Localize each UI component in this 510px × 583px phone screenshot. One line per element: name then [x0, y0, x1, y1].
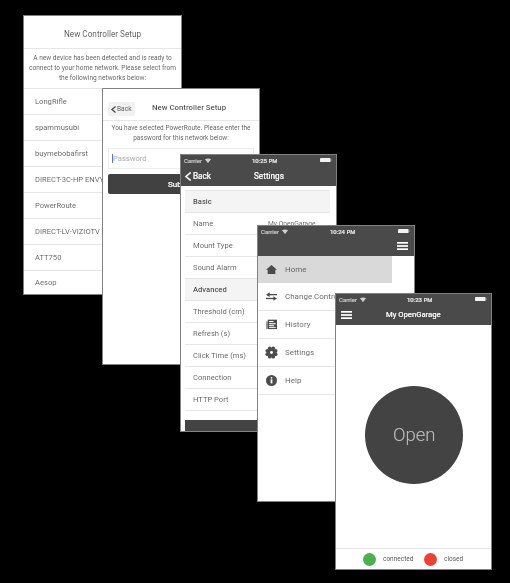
staticText: Settings	[285, 348, 315, 357]
button[interactable]: Change Controller	[258, 283, 392, 310]
staticText: History	[285, 320, 311, 329]
staticText: PowerRoute	[35, 201, 77, 210]
staticText: Aesop	[35, 278, 57, 287]
staticText: HTTP Port	[193, 395, 229, 404]
staticText: New Controller Setup	[64, 29, 142, 39]
button[interactable]: Threshold (cm)	[185, 301, 330, 322]
button[interactable]: Name	[185, 213, 330, 234]
button[interactable]: Connection	[185, 367, 330, 388]
staticText: Basic	[193, 197, 212, 206]
staticText: Submit	[168, 180, 194, 189]
staticText: Password	[113, 154, 147, 163]
staticText: Home	[285, 265, 307, 274]
button[interactable]: Back	[184, 171, 212, 181]
staticText: Sound Alarm	[193, 263, 237, 272]
staticText: Help	[285, 376, 302, 385]
button[interactable]: Home	[258, 256, 392, 283]
staticText: Refresh (s)	[193, 329, 231, 338]
staticText: 10:25 PM	[252, 157, 278, 164]
button[interactable]: Open navigation menu	[393, 237, 411, 255]
button[interactable]: Advanced	[185, 279, 330, 300]
staticText: DIRECT-3C-HP ENVY	[35, 175, 105, 184]
staticText: A new device has been detected and is re…	[26, 54, 179, 82]
button[interactable]: Settings	[258, 339, 392, 366]
staticText: Name	[193, 219, 214, 228]
button[interactable]: DIRECT-LV-VIZIOTV	[24, 219, 181, 244]
button[interactable]: Refresh (s)	[185, 323, 330, 344]
staticText: connected	[383, 555, 414, 563]
staticText: Threshold (cm)	[193, 307, 245, 316]
staticText: Mount Type	[193, 241, 233, 250]
button[interactable]: buymebobafirst	[24, 141, 181, 166]
staticText: 10:24 PM	[330, 228, 356, 235]
staticText: DIRECT-LV-VIZIOTV	[35, 227, 100, 236]
button[interactable]: Aesop	[24, 271, 181, 294]
button[interactable]: spammusubi	[24, 115, 181, 140]
button[interactable]: Back	[108, 102, 135, 116]
staticText: Settings	[254, 171, 284, 181]
button[interactable]: Sound Alarm	[185, 257, 330, 278]
button[interactable]: PowerRoute	[24, 193, 181, 218]
staticText: New Controller Setup	[152, 103, 227, 112]
staticText: Carrier	[184, 157, 202, 164]
staticText: Change Controller	[285, 292, 349, 301]
staticText: Back	[193, 171, 211, 181]
button[interactable]: Open	[365, 386, 463, 484]
button[interactable]: Basic	[185, 191, 330, 212]
staticText: Advanced	[193, 285, 227, 294]
button[interactable]: Open navigation menu	[337, 306, 355, 324]
button[interactable]: LongRifle	[24, 89, 181, 114]
button[interactable]: ATT750	[24, 245, 181, 270]
staticText: spammusubi	[35, 123, 80, 132]
button[interactable]: HTTP Port	[185, 389, 330, 410]
staticText: LongRifle	[35, 97, 67, 106]
staticText: Click Time (ms)	[193, 351, 246, 360]
staticText: My OpenGarage	[268, 220, 316, 228]
button[interactable]: Click Time (ms)	[185, 345, 330, 366]
staticText: Back	[117, 105, 132, 113]
button[interactable]: Submit	[108, 174, 254, 194]
staticText: ATT750	[35, 253, 62, 262]
staticText: You have selected PowerRoute. Please ent…	[107, 124, 255, 141]
button[interactable]: Mount Type	[185, 235, 330, 256]
staticText: Carrier	[339, 296, 357, 303]
staticText: Connection	[193, 373, 232, 382]
button[interactable]: Help	[258, 367, 392, 394]
staticText: My OpenGarage	[386, 310, 441, 319]
staticText: closed	[444, 555, 464, 563]
staticText: 10:23 PM	[407, 296, 433, 303]
staticText: Open	[393, 424, 436, 446]
staticText: Carrier	[261, 228, 279, 235]
staticText: buymebobafirst	[35, 149, 88, 158]
button[interactable]: History	[258, 311, 392, 338]
button[interactable]: DIRECT-3C-HP ENVY	[24, 167, 181, 192]
